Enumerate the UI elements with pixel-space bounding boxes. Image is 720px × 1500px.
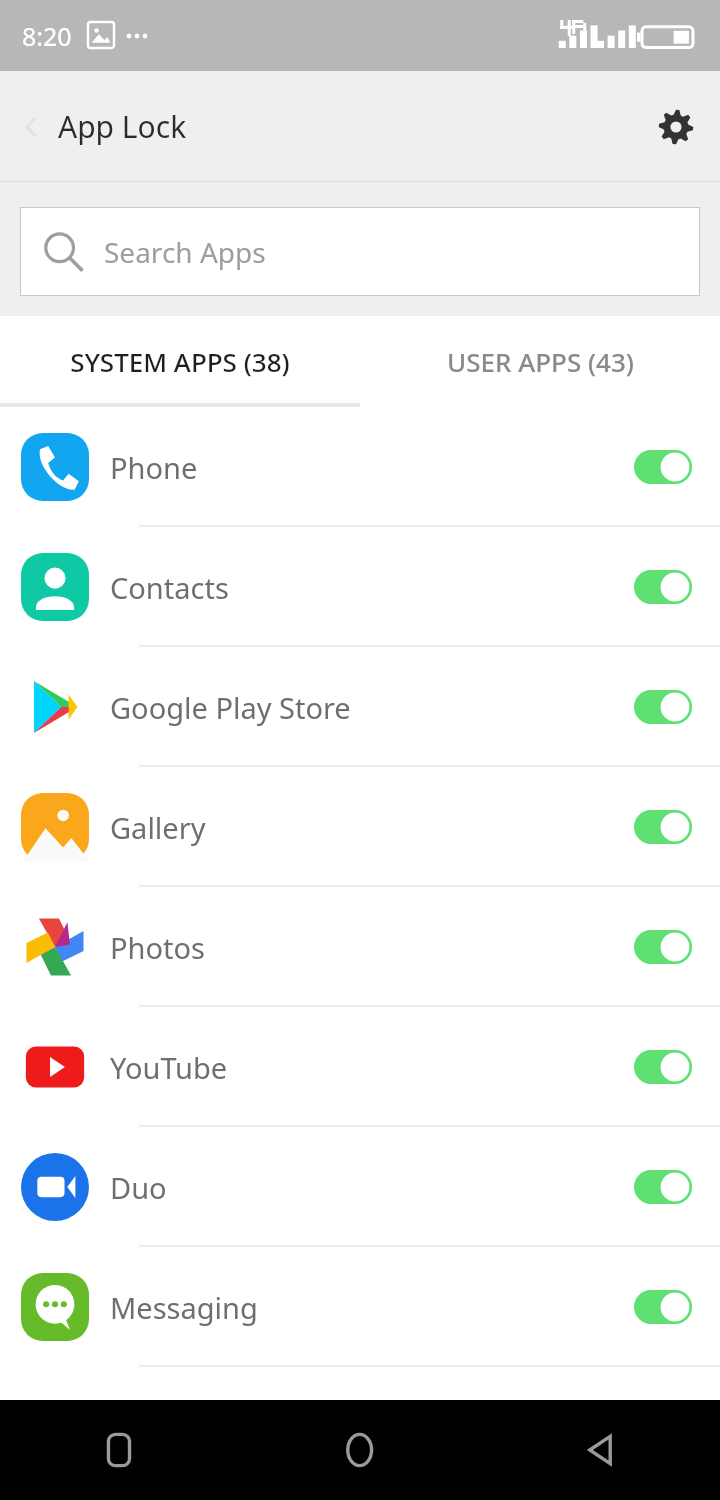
staticText: Phone (110, 448, 198, 487)
button[interactable]: Gallery (0, 767, 720, 887)
staticText: Search Apps (104, 233, 266, 271)
staticText: Contacts (110, 568, 229, 607)
staticText: Photos (110, 928, 205, 967)
button[interactable]: SYSTEM APPS (38) (0, 316, 360, 407)
staticText: App Lock (58, 106, 187, 147)
button[interactable]: Recent apps (80, 1410, 160, 1490)
button[interactable]: Back (560, 1410, 640, 1490)
button[interactable]: Google Play Store (0, 647, 720, 767)
button[interactable]: Photos (0, 887, 720, 1007)
button[interactable]: Lock toggle for Contacts (634, 570, 692, 604)
button[interactable]: YouTube (0, 1007, 720, 1127)
button[interactable]: Lock toggle for YouTube (634, 1050, 692, 1084)
staticText: USER APPS (43) (447, 344, 634, 379)
staticText: Duo (110, 1168, 167, 1207)
staticText: YouTube (110, 1048, 228, 1087)
button[interactable]: Search Apps (20, 207, 700, 296)
button[interactable]: Lock toggle for Google Play Store (634, 690, 692, 724)
button[interactable]: Duo (0, 1127, 720, 1247)
button[interactable]: Lock toggle for Messaging (634, 1290, 692, 1324)
staticText: 8:20 (22, 19, 72, 53)
button[interactable]: Back (0, 95, 64, 159)
staticText: SYSTEM APPS (38) (70, 344, 290, 379)
button[interactable]: Settings (644, 95, 708, 159)
button[interactable]: Lock toggle for Photos (634, 930, 692, 964)
button[interactable]: Lock toggle for Duo (634, 1170, 692, 1204)
button[interactable]: Lock toggle for Gallery (634, 810, 692, 844)
button[interactable]: Contacts (0, 527, 720, 647)
staticText: Messaging (110, 1288, 258, 1327)
button[interactable]: Lock toggle for Phone (634, 450, 692, 484)
staticText: Gallery (110, 808, 206, 847)
button[interactable]: Messaging (0, 1247, 720, 1367)
staticText: Google Play Store (110, 688, 351, 727)
button[interactable]: USER APPS (43) (360, 316, 720, 407)
button[interactable]: Home (320, 1410, 400, 1490)
button[interactable]: Phone (0, 407, 720, 527)
